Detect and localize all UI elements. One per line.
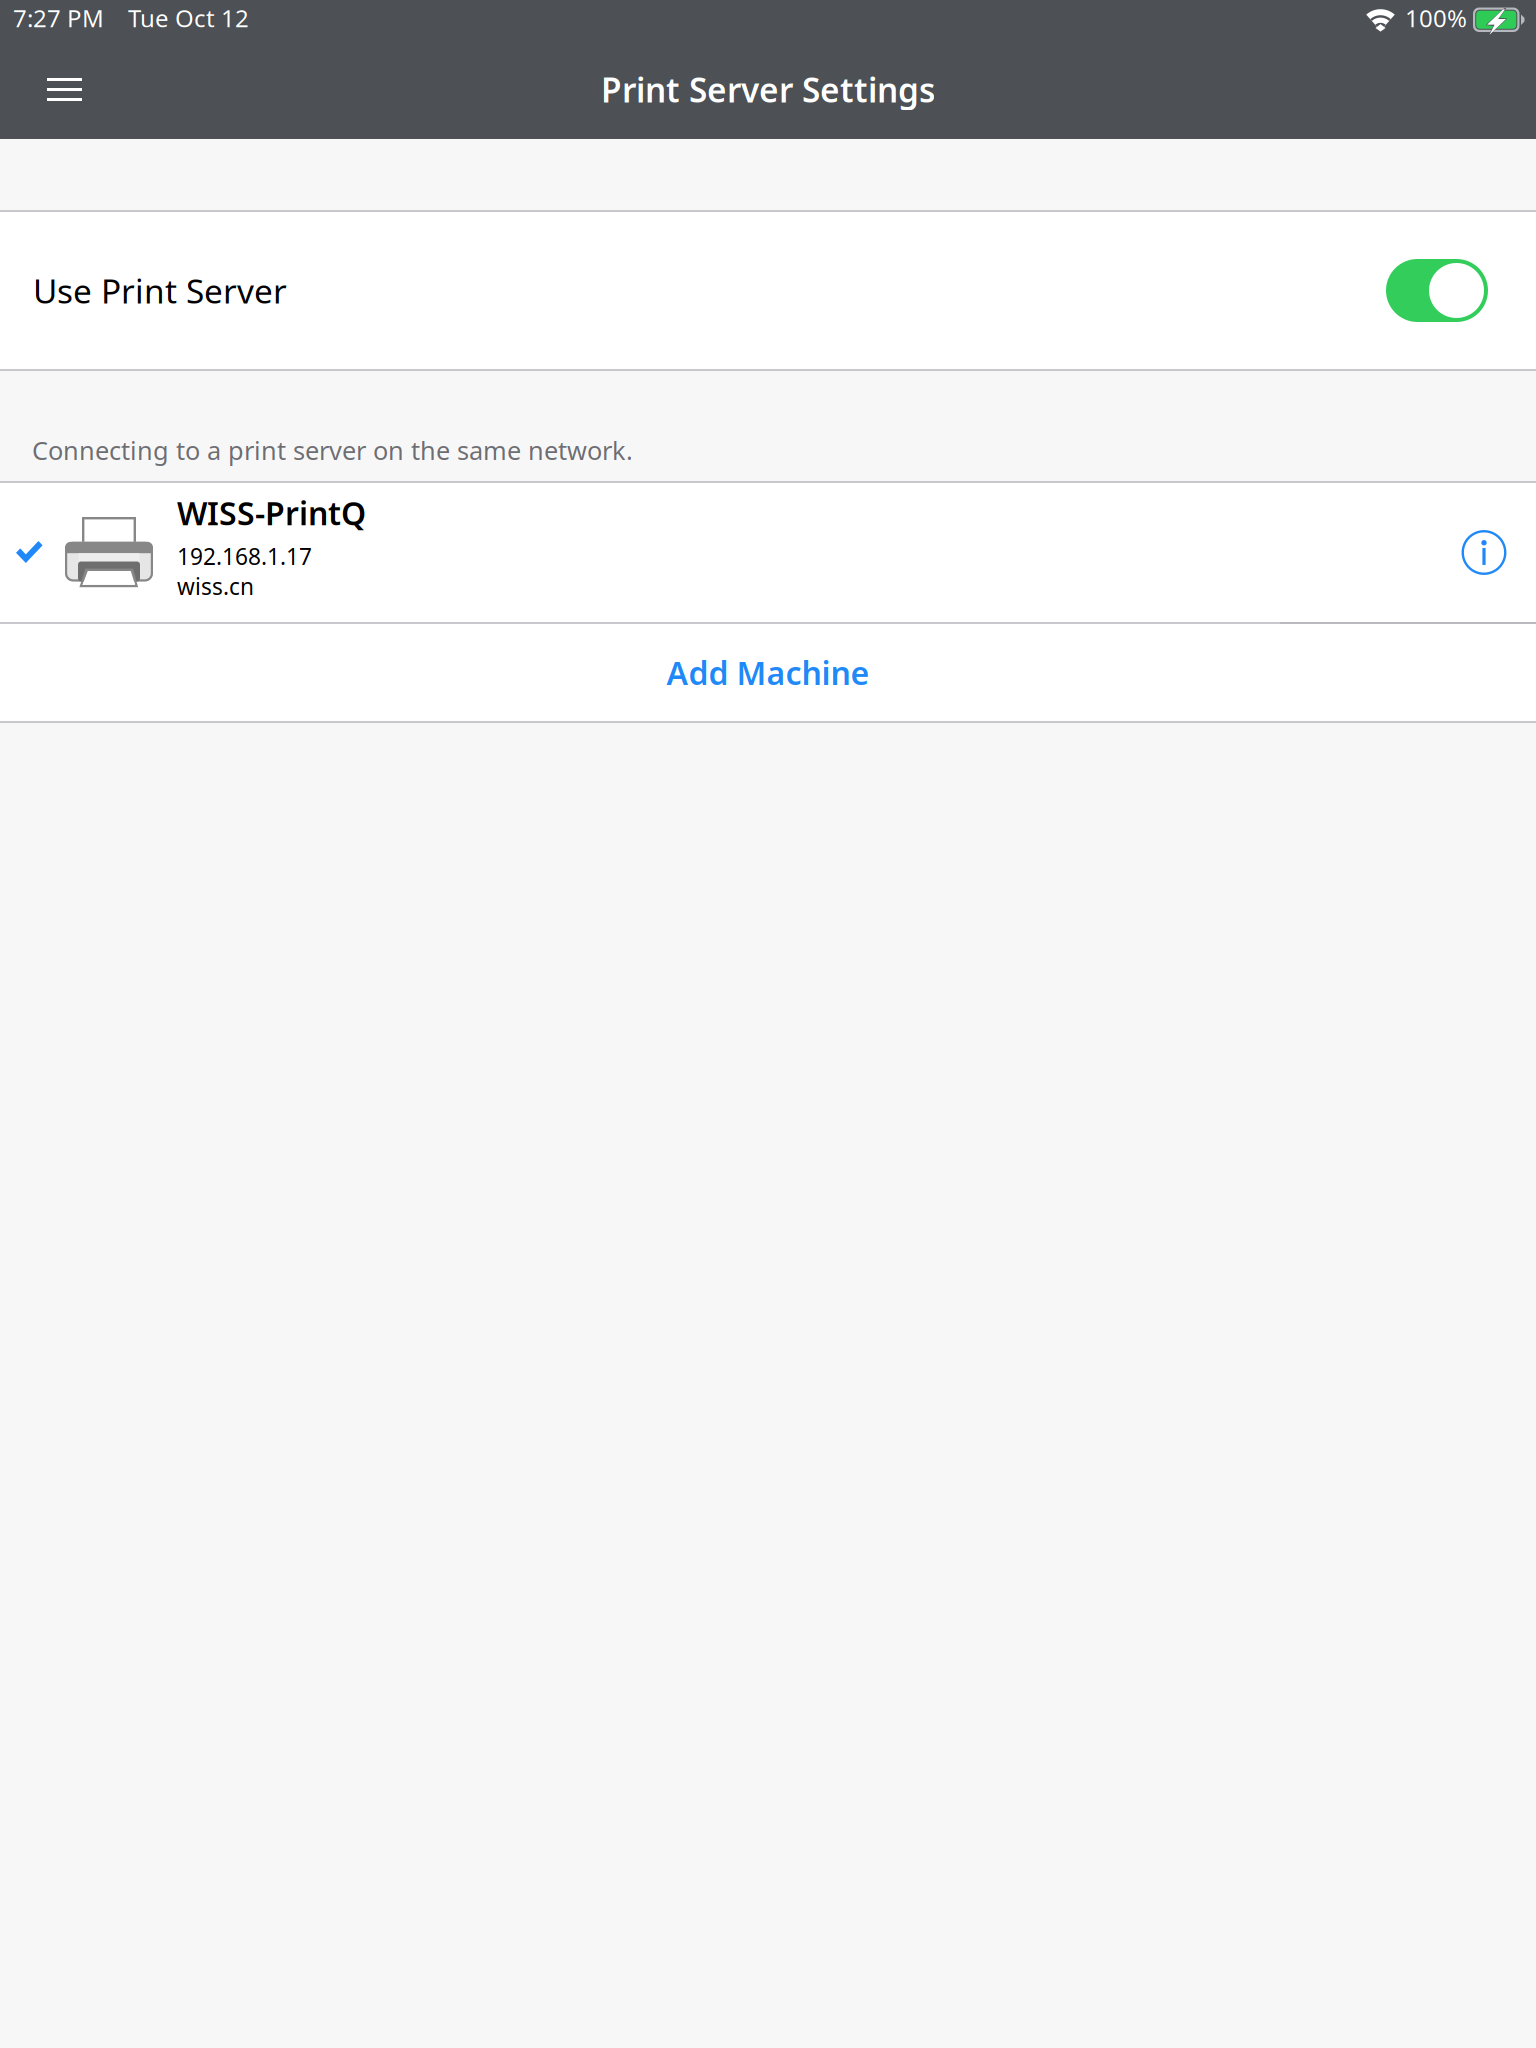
staticText: Use Print Server xyxy=(33,268,287,313)
button[interactable]: Menu xyxy=(0,52,112,127)
button[interactable]: Use Print Server xyxy=(0,212,1536,369)
staticText: 100% xyxy=(1405,2,1467,34)
staticText: Connecting to a print server on the same… xyxy=(32,433,633,467)
staticText: Print Server Settings xyxy=(601,67,935,112)
button[interactable]: WISS-PrintQ xyxy=(0,483,1536,622)
button[interactable]: More info about WISS-PrintQ xyxy=(1438,483,1536,621)
staticText: 7:27 PM xyxy=(13,2,104,34)
staticText: WISS-PrintQ xyxy=(177,492,366,534)
button[interactable]: Add Machine xyxy=(0,624,1536,721)
staticText: Add Machine xyxy=(666,651,869,694)
staticText: Tue Oct 12 xyxy=(128,2,249,34)
staticText: wiss.cn xyxy=(177,571,254,601)
staticText: 192.168.1.17 xyxy=(177,541,312,571)
